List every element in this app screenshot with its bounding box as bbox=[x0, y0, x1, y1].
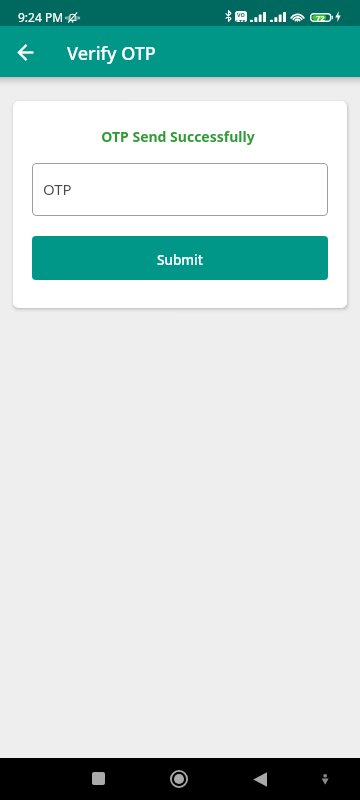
button[interactable]: Back bbox=[236, 758, 284, 800]
staticText: 72 bbox=[316, 13, 325, 22]
button[interactable]: OTP bbox=[32, 163, 328, 216]
staticText: LTE bbox=[236, 18, 246, 22]
button[interactable]: Hide keyboard bbox=[305, 758, 345, 800]
staticText: VO bbox=[237, 11, 245, 18]
staticText: Verify OTP bbox=[67, 41, 156, 66]
button[interactable]: Back bbox=[4, 30, 48, 74]
staticText: OTP Send Successfully bbox=[101, 127, 255, 146]
button[interactable]: Recent apps bbox=[74, 758, 122, 800]
staticText: 9:24 PM bbox=[18, 9, 64, 25]
staticText: OTP bbox=[43, 179, 72, 199]
staticText: Submit bbox=[157, 251, 203, 269]
button[interactable]: Home bbox=[155, 758, 203, 800]
button[interactable]: Submit bbox=[32, 236, 328, 280]
